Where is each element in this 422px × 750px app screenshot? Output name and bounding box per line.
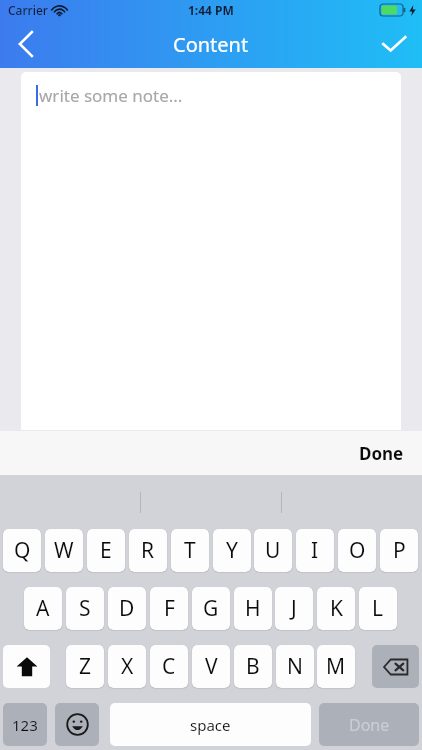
button[interactable]: W	[45, 529, 83, 572]
button[interactable]: Q	[3, 529, 41, 572]
button[interactable]: I	[296, 529, 334, 572]
staticText: R	[141, 536, 155, 565]
staticText: T	[184, 536, 196, 565]
staticText: P	[393, 536, 406, 565]
staticText: write some note...	[39, 84, 183, 107]
button[interactable]: Shift	[3, 645, 50, 688]
button[interactable]: Done	[319, 703, 419, 746]
staticText: L	[372, 594, 384, 623]
staticText: E	[100, 536, 112, 565]
button[interactable]: O	[338, 529, 376, 572]
staticText: X	[121, 652, 134, 681]
staticText: N	[287, 652, 303, 681]
button[interactable]: Z	[66, 645, 104, 688]
button[interactable]: M	[317, 645, 355, 688]
button[interactable]: T	[171, 529, 209, 572]
staticText: F	[164, 594, 175, 623]
staticText: G	[203, 594, 219, 623]
button[interactable]: B	[234, 645, 272, 688]
staticText: H	[245, 594, 261, 623]
button[interactable]: Done	[349, 436, 414, 471]
staticText: A	[36, 594, 50, 623]
button[interactable]: write some note...	[21, 72, 401, 430]
staticText: space	[190, 715, 231, 735]
staticText: I	[311, 536, 319, 565]
button[interactable]: X	[108, 645, 146, 688]
button[interactable]: N	[276, 645, 314, 688]
button[interactable]: D	[108, 587, 146, 630]
staticText: Carrier	[8, 2, 48, 18]
staticText: J	[291, 594, 297, 623]
button[interactable]: S	[66, 587, 104, 630]
staticText: Z	[79, 652, 92, 681]
button[interactable]: space	[110, 703, 311, 746]
button[interactable]: Emoji	[55, 703, 99, 746]
staticText: C	[162, 652, 176, 681]
button[interactable]: Back	[0, 20, 52, 68]
staticText: O	[349, 536, 366, 565]
button[interactable]: A	[24, 587, 62, 630]
button[interactable]: K	[317, 587, 355, 630]
button[interactable]: Backspace	[372, 645, 419, 688]
staticText: S	[79, 594, 91, 623]
staticText: Y	[226, 536, 238, 565]
button[interactable]: H	[234, 587, 272, 630]
staticText: Q	[14, 536, 31, 565]
staticText: U	[265, 536, 281, 565]
button[interactable]: C	[150, 645, 188, 688]
staticText: V	[205, 652, 218, 681]
staticText: D	[119, 594, 135, 623]
button[interactable]: Y	[213, 529, 251, 572]
staticText: Done	[359, 442, 404, 465]
button[interactable]: P	[380, 529, 418, 572]
button[interactable]: L	[359, 587, 397, 630]
button[interactable]: 123	[3, 703, 47, 746]
staticText: Done	[349, 714, 390, 736]
button[interactable]: R	[129, 529, 167, 572]
staticText: M	[326, 652, 346, 681]
staticText: K	[330, 594, 343, 623]
staticText: Content	[173, 31, 249, 58]
staticText: W	[54, 536, 74, 565]
button[interactable]: Save	[366, 20, 422, 68]
button[interactable]: F	[150, 587, 188, 630]
button[interactable]: G	[192, 587, 230, 630]
staticText: 123	[12, 715, 38, 735]
button[interactable]: J	[275, 587, 313, 630]
staticText: 1:44 PM	[188, 2, 234, 18]
button[interactable]: V	[192, 645, 230, 688]
staticText: B	[246, 652, 260, 681]
button[interactable]: U	[254, 529, 292, 572]
button[interactable]: E	[87, 529, 125, 572]
